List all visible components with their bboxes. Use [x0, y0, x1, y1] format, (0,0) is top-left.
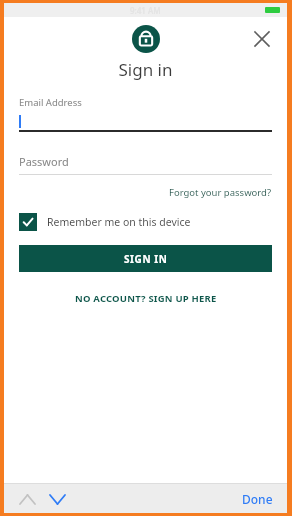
staticText: NO ACCOUNT? SIGN UP HERE: [75, 292, 217, 305]
staticText: Remember me on this device: [47, 215, 191, 229]
button[interactable]: Forgot your password?: [169, 184, 272, 201]
button[interactable]: Password: [19, 152, 272, 170]
button[interactable]: Remember me on this device: [19, 213, 272, 231]
button[interactable]: Close: [249, 26, 275, 52]
staticText: Email Address: [19, 96, 82, 109]
button[interactable]: [19, 113, 272, 130]
staticText: 9:41 AM: [130, 5, 161, 16]
button[interactable]: NO ACCOUNT? SIGN UP HERE: [67, 289, 225, 308]
button[interactable]: Done: [228, 487, 287, 511]
staticText: Done: [242, 491, 273, 507]
staticText: Sign in: [4, 58, 287, 81]
button[interactable]: Next field: [46, 488, 68, 510]
button[interactable]: Previous field: [16, 488, 38, 510]
staticText: Forgot your password?: [169, 186, 272, 199]
staticText: SIGN IN: [124, 252, 168, 266]
button[interactable]: SIGN IN: [19, 245, 272, 272]
staticText: Password: [19, 154, 69, 169]
